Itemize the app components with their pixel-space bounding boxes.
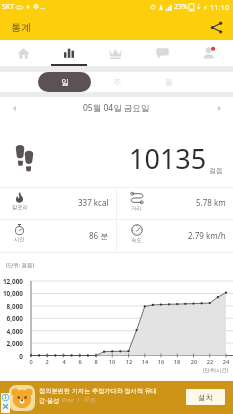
button[interactable]: 주: [91, 72, 143, 92]
staticText: Play: [62, 396, 74, 404]
button[interactable]: 월: [143, 72, 195, 92]
button[interactable]: 거리: [117, 188, 233, 219]
staticText: 18: [170, 358, 184, 366]
staticText: 4: [57, 358, 71, 366]
staticText: 05월 04일 금요일: [83, 102, 150, 114]
button[interactable]: Share: [206, 17, 226, 37]
staticText: 2: [40, 358, 54, 366]
button[interactable]: Home: [0, 40, 46, 66]
staticText: 23%: [174, 2, 188, 12]
staticText: 통계: [11, 21, 31, 34]
staticText: 14: [138, 358, 152, 366]
staticText: 참의분변한 기자는 추정가다와 정서적 유대: [39, 386, 157, 394]
staticText: 속도: [131, 237, 142, 244]
staticText: 337 kcal: [78, 197, 109, 208]
staticText: 주: [113, 77, 121, 87]
staticText: 86 분: [89, 230, 109, 241]
button[interactable]: Ad choices: [1, 393, 10, 413]
staticText: 0: [0, 352, 23, 361]
button[interactable]: 시간: [0, 220, 116, 252]
button[interactable]: Profile: [186, 40, 233, 66]
staticText: SKT: [2, 2, 15, 12]
staticText: (단위:시간): [203, 366, 229, 373]
staticText: 칼로리: [12, 204, 28, 211]
staticText: 10,000: [0, 289, 23, 298]
staticText: 4,000: [0, 327, 23, 336]
staticText: 6,000: [0, 314, 23, 323]
button[interactable]: 일: [38, 72, 91, 92]
button[interactable]: Next day: [205, 97, 233, 119]
staticText: 6: [73, 358, 87, 366]
staticText: 월: [165, 77, 173, 87]
button[interactable]: 칼로리: [0, 188, 116, 219]
staticText: 무료: [84, 396, 96, 404]
staticText: 2,000: [0, 339, 23, 348]
button[interactable]: Statistics: [46, 40, 92, 66]
button[interactable]: Chat: [139, 40, 186, 66]
staticText: 일: [61, 77, 69, 87]
staticText: 20: [187, 358, 201, 366]
staticText: 설치: [198, 393, 213, 402]
staticText: ↓: [196, 3, 202, 11]
staticText: 12: [122, 358, 136, 366]
staticText: 24: [219, 358, 233, 366]
staticText: 11:10: [210, 2, 230, 12]
staticText: 10: [105, 358, 119, 366]
staticText: 갑·울성: [39, 396, 60, 404]
staticText: 0: [24, 358, 38, 366]
staticText: 거리: [131, 205, 142, 212]
button[interactable]: Previous day: [0, 97, 28, 119]
staticText: 8: [89, 358, 103, 366]
staticText: 16: [154, 358, 168, 366]
button[interactable]: Ad choices: [0, 381, 233, 414]
staticText: 시간: [14, 236, 25, 243]
staticText: ⚡: [203, 4, 208, 11]
staticText: |: [77, 396, 81, 404]
staticText: 8,000: [0, 302, 23, 311]
button[interactable]: 설치: [186, 389, 225, 405]
staticText: 5.78 km: [196, 197, 226, 208]
staticText: 2.79 km/h: [188, 230, 226, 241]
staticText: 12,000: [0, 277, 23, 286]
button[interactable]: Ranking: [92, 40, 139, 66]
staticText: 걸음: [209, 166, 223, 175]
staticText: …: [40, 2, 46, 12]
staticText: 22: [203, 358, 217, 366]
staticText: 10135: [129, 140, 207, 177]
staticText: ❇: [33, 3, 39, 11]
staticText: (단위: 걸음): [6, 261, 35, 269]
button[interactable]: 속도: [117, 220, 233, 252]
